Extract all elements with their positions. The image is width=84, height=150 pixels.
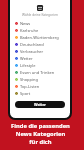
button[interactable]: Lifestyle [10,62,70,69]
staticText: Sport [20,91,31,96]
staticText: Shopping [20,77,38,82]
button[interactable]: News [10,20,70,27]
staticText: Wetter [20,56,33,61]
button[interactable]: Verbraucher [10,48,70,55]
staticText: Lifestyle [20,63,36,68]
button[interactable]: Weiter [15,101,65,108]
staticText: Karlsruhe [20,28,39,33]
staticText: Deutschland [20,42,44,47]
staticText: Wähle deine Kategorien [10,13,70,17]
button[interactable]: Karlsruhe [10,27,70,34]
staticText: Verbraucher [20,49,44,54]
button[interactable]: Essen und Trinken [10,69,70,76]
staticText: News [20,21,31,26]
staticText: Essen und Trinken [20,70,55,75]
button[interactable]: Top-Listen [10,83,70,90]
button[interactable]: Deutschland [10,41,70,48]
button[interactable]: Sport [10,90,70,97]
button[interactable]: Baden-Württemberg [10,34,70,41]
staticText: Baden-Württemberg [20,35,59,40]
staticText: Top-Listen [20,84,40,89]
button[interactable]: Wetter [10,55,70,62]
staticText: Weiter [34,102,46,107]
staticText: Finde die passenden News Kategorien für … [11,122,70,146]
button[interactable]: Shopping [10,76,70,83]
